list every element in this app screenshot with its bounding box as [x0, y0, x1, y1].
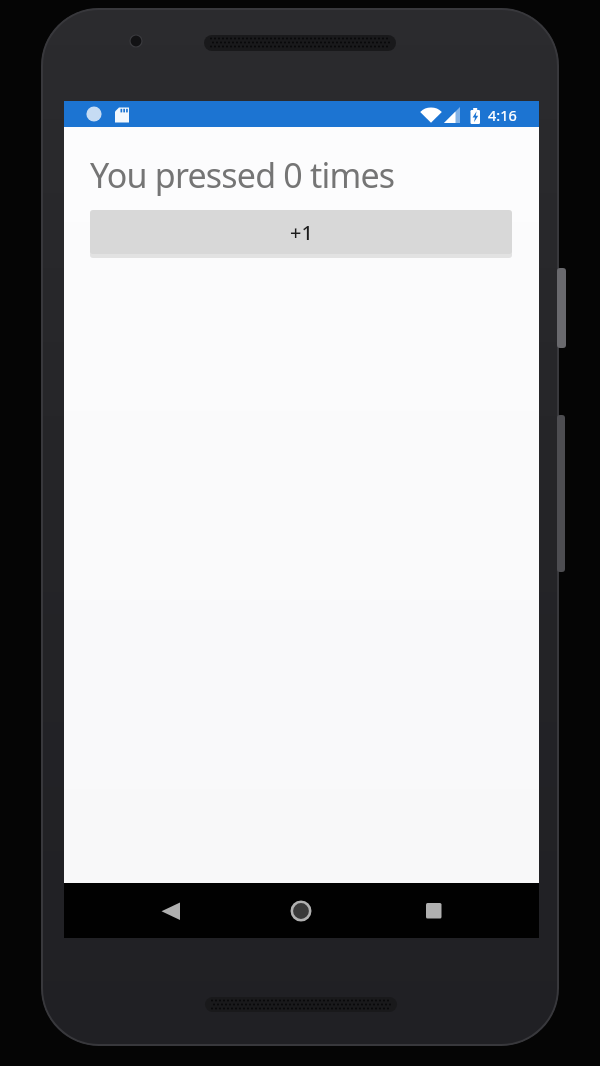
staticText: +1 [290, 219, 313, 246]
button[interactable]: +1 [90, 210, 512, 254]
button[interactable] [256, 883, 346, 938]
staticText: You pressed 0 times [90, 152, 395, 198]
button[interactable] [134, 883, 224, 938]
staticText: 4:16 [488, 105, 517, 125]
button[interactable] [379, 883, 469, 938]
